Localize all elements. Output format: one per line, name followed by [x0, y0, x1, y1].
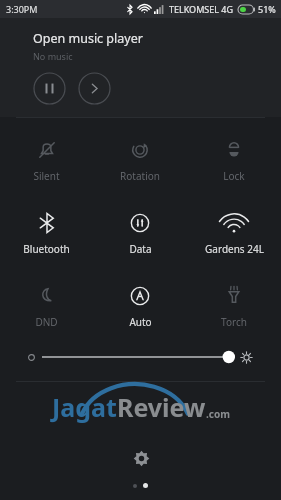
staticText: Open music player: [33, 30, 143, 47]
button[interactable]: [0, 349, 281, 365]
button[interactable]: Silent: [0, 134, 93, 187]
staticText: DND: [35, 315, 58, 329]
staticText: Bluetooth: [23, 242, 70, 256]
staticText: Lock: [223, 169, 245, 183]
button[interactable]: Pause: [33, 72, 66, 105]
staticText: Gardens 24L: [205, 242, 264, 256]
staticText: 51%: [258, 3, 276, 15]
staticText: Data: [129, 242, 152, 256]
button[interactable]: Auto: [93, 280, 187, 333]
staticText: TELKOMSEL 4G: [169, 3, 234, 15]
staticText: Silent: [33, 169, 60, 183]
staticText: Torch: [221, 315, 247, 329]
button[interactable]: DND: [0, 280, 93, 333]
button[interactable]: Settings: [128, 445, 154, 471]
button[interactable]: Next: [78, 72, 111, 105]
button[interactable]: Bluetooth: [0, 207, 93, 260]
button[interactable]: Data: [93, 207, 187, 260]
button[interactable]: Lock: [187, 134, 281, 187]
staticText: Jagat: [52, 390, 117, 424]
staticText: No music: [33, 50, 73, 62]
staticText: Rotation: [120, 169, 160, 183]
staticText: 3:30PM: [6, 3, 38, 15]
staticText: .com: [206, 407, 230, 421]
button[interactable]: Rotation: [93, 134, 187, 187]
button[interactable]: Gardens 24L: [187, 207, 281, 260]
staticText: Auto: [129, 315, 152, 329]
staticText: Review: [117, 390, 206, 424]
button[interactable]: Torch: [187, 280, 281, 333]
button[interactable]: Open music player: [0, 18, 281, 117]
